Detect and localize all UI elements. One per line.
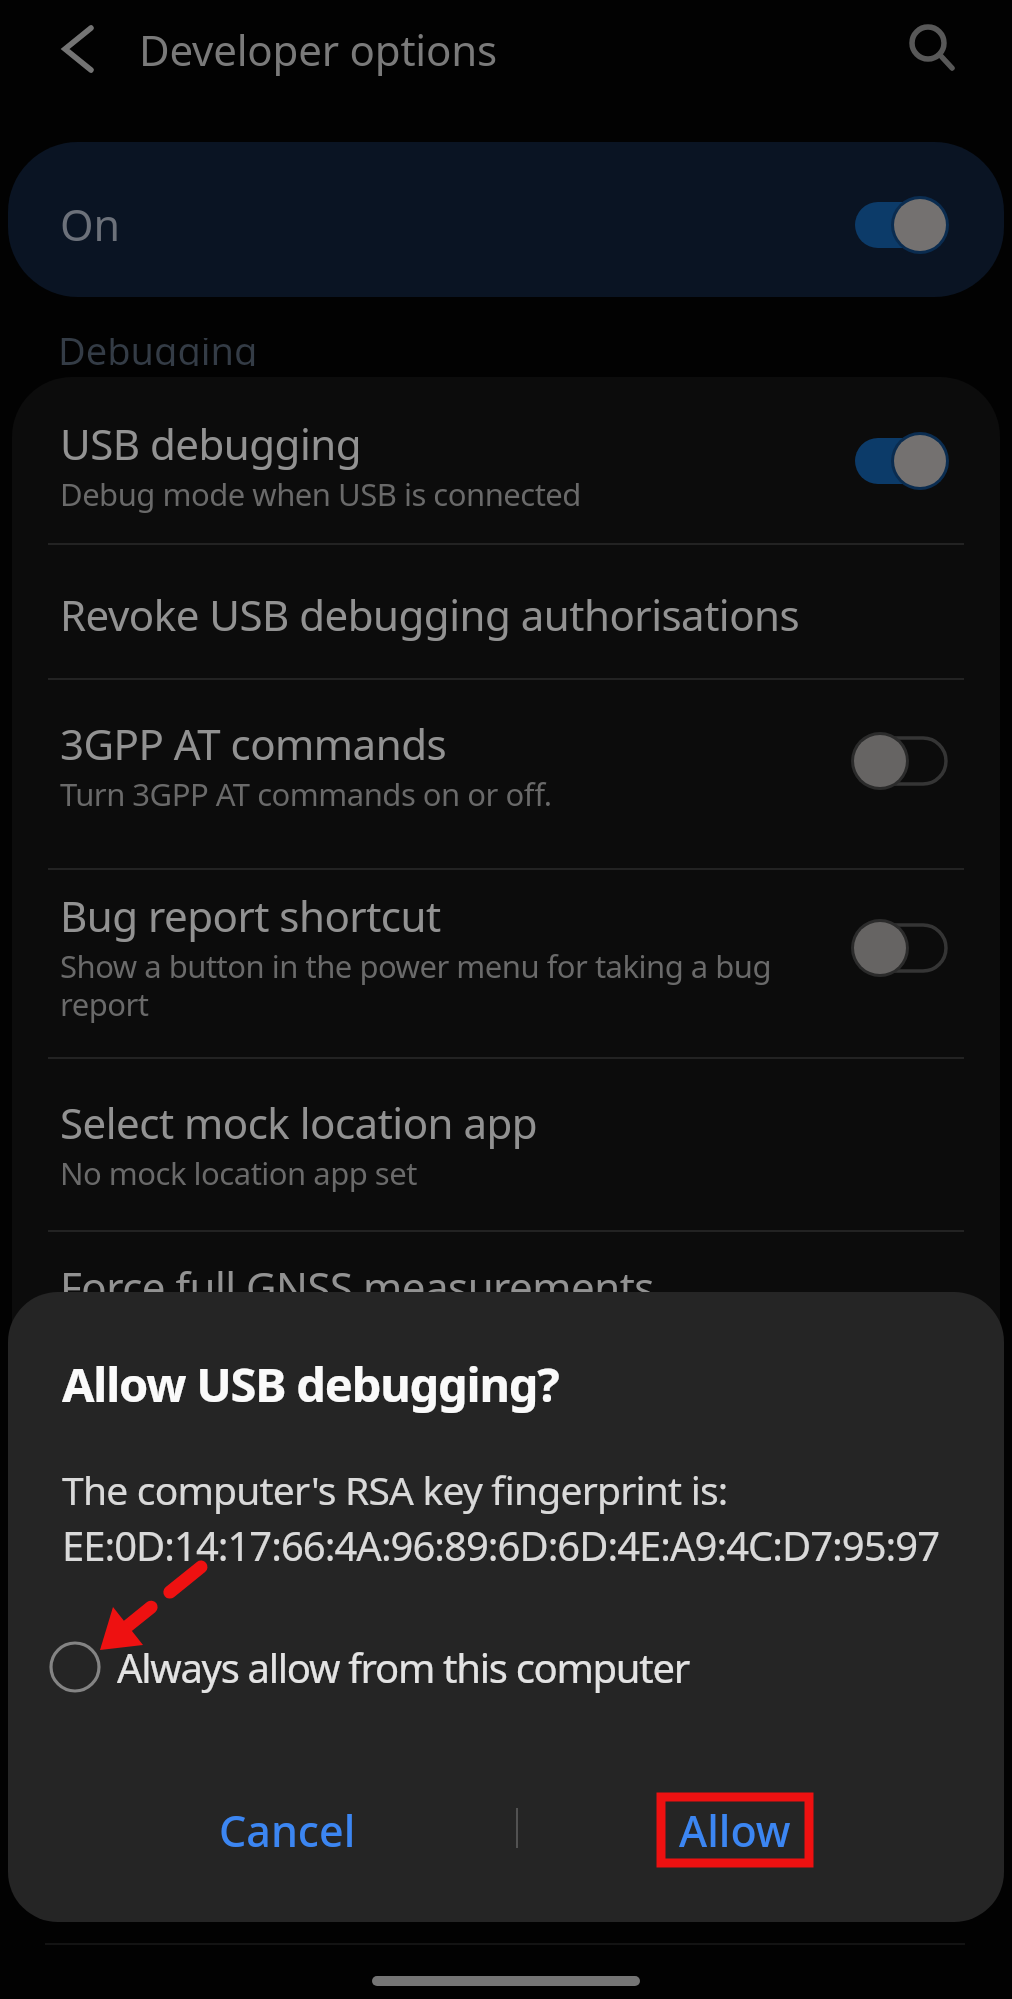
button[interactable] xyxy=(40,1630,740,1706)
button[interactable] xyxy=(852,731,949,791)
button[interactable] xyxy=(12,1059,1000,1229)
staticText: USB debugging xyxy=(60,415,362,472)
staticText: Debug mode when USB is connected xyxy=(60,473,581,515)
staticText: Allow xyxy=(679,1801,791,1860)
button[interactable] xyxy=(8,142,1004,297)
staticText: Force full GNSS measurements xyxy=(60,1258,654,1315)
button[interactable] xyxy=(12,870,1000,1055)
staticText: No mock location app set xyxy=(60,1152,417,1194)
button[interactable]: Allow xyxy=(605,1790,865,1870)
staticText: On xyxy=(60,195,121,254)
staticText: Cancel xyxy=(219,1801,356,1860)
button[interactable] xyxy=(894,10,970,86)
staticText: EE:0D:14:17:66:4A:96:89:6D:6D:4E:A9:4C:D… xyxy=(62,1518,940,1572)
button[interactable] xyxy=(852,918,949,978)
staticText: 3GPP AT commands xyxy=(60,715,447,772)
staticText: Bug report shortcut xyxy=(60,887,441,944)
button[interactable] xyxy=(12,545,1000,677)
staticText: Debugging xyxy=(58,338,258,366)
staticText: Developer options xyxy=(139,21,497,78)
button[interactable] xyxy=(12,680,1000,866)
staticText: Revoke USB debugging authorisations xyxy=(60,586,800,643)
staticText: report xyxy=(60,983,149,1025)
button[interactable]: Cancel xyxy=(157,1790,417,1870)
staticText: Turn 3GPP AT commands on or off. xyxy=(60,773,552,815)
button[interactable] xyxy=(852,431,949,491)
button[interactable] xyxy=(12,390,1000,542)
staticText: The computer's RSA key fingerprint is: xyxy=(62,1463,728,1516)
staticText: Select mock location app xyxy=(60,1094,538,1151)
button[interactable] xyxy=(40,14,110,84)
staticText: Show a button in the power menu for taki… xyxy=(60,945,772,987)
staticText: Allow USB debugging? xyxy=(62,1352,559,1416)
button[interactable] xyxy=(852,195,949,255)
staticText: Always allow from this computer xyxy=(117,1640,689,1694)
